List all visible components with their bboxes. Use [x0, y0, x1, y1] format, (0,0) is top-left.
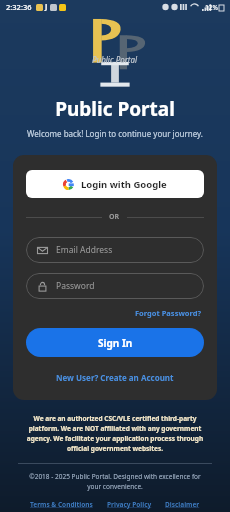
button[interactable]: New User? Create an Account [54, 370, 176, 385]
staticText: OR [109, 212, 120, 222]
button[interactable]: Sign In [26, 328, 204, 357]
staticText: 2:32:36 [6, 2, 32, 12]
button[interactable]: Email Address [26, 237, 204, 263]
staticText: We are an authorized CSC/VLE certified t… [22, 414, 208, 453]
staticText: ©2018 - 2025 Public Portal. Designed wit… [26, 472, 204, 491]
staticText: Disclaimer [165, 500, 200, 509]
button[interactable]: Password [26, 273, 204, 299]
staticText: New User? Create an Account [56, 372, 174, 383]
staticText: Public Portal [0, 96, 230, 122]
staticText: Welcome back! Login to continue your jou… [0, 128, 230, 139]
staticText: Sign In [98, 336, 133, 350]
staticText: Login with Google [81, 178, 167, 191]
staticText: Password [56, 280, 95, 292]
staticText: Email Address [56, 244, 113, 256]
staticText: Public Portal [92, 54, 138, 65]
button[interactable]: Disclaimer [165, 499, 200, 510]
staticText: Terms & Conditions [30, 500, 93, 509]
button[interactable]: Terms & Conditions [30, 499, 93, 510]
staticText: Privacy Policy [107, 500, 152, 509]
staticText: 12% [205, 3, 218, 12]
button[interactable]: Login with Google [26, 170, 204, 198]
button[interactable]: Privacy Policy [107, 499, 152, 510]
staticText: J [45, 2, 48, 12]
staticText: Forgot Password? [135, 308, 202, 318]
button[interactable]: Forgot Password? [133, 306, 204, 320]
